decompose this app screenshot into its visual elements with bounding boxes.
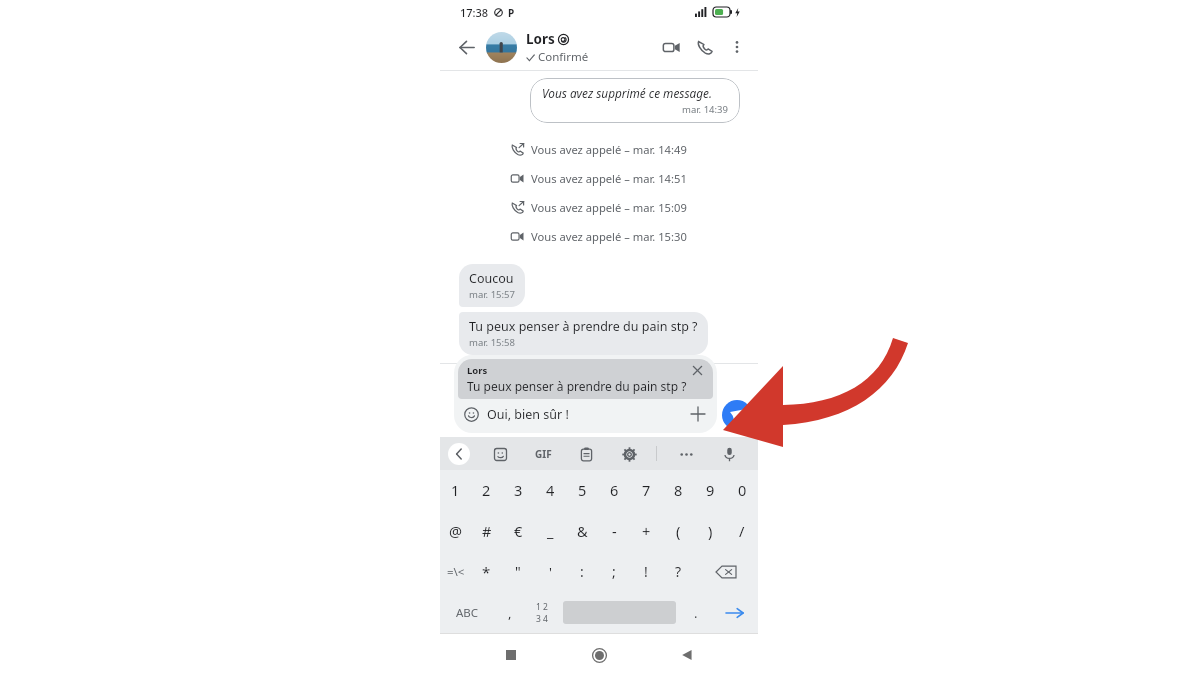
button[interactable]: ( [662,510,694,551]
staticText: . [694,604,698,622]
button[interactable]: Coucou [459,264,525,307]
button[interactable]: ) [694,510,726,551]
staticText: 1 [451,480,460,500]
button[interactable]: Lors [458,359,713,399]
button[interactable]: 9 [694,470,726,510]
button[interactable]: + [630,510,662,551]
button[interactable]: Hide toolbar [448,443,470,465]
button[interactable]: Video call [654,30,688,64]
button[interactable]: Vous avez appelé – mar. 15:09 [440,193,758,222]
button[interactable]: 2 [471,470,502,510]
button[interactable]: Home [582,638,616,672]
button[interactable]: ABC [440,592,495,633]
button[interactable]: 6 [598,470,630,510]
staticText: 4 [546,480,555,500]
button[interactable]: Emoji [463,406,480,423]
staticText: Lors [467,364,488,377]
button[interactable]: : [566,551,598,592]
staticText: 7 [642,480,651,500]
button[interactable]: 5 [566,470,598,510]
staticText: ) [708,521,713,541]
staticText: ' [549,563,552,581]
staticText: P [508,6,515,20]
staticText: =\< [447,564,465,580]
button[interactable]: Voice input [717,442,741,466]
button[interactable]: 4 [534,470,566,510]
button[interactable]: Call [688,30,722,64]
button[interactable]: Add attachment [687,403,709,425]
button[interactable]: 7 [630,470,662,510]
staticText: € [514,521,523,541]
button[interactable]: Vous avez appelé – mar. 14:49 [440,135,758,164]
staticText: Vous avez appelé – mar. 15:09 [531,200,687,215]
button[interactable]: 0 [726,470,758,510]
staticText: ? [675,562,682,581]
button[interactable]: Send [722,400,752,430]
button[interactable]: Vous avez appelé – mar. 15:30 [440,222,758,251]
staticText: Tu peux penser à prendre du pain stp ? [469,318,698,335]
staticText: Vous avez appelé – mar. 15:30 [531,229,687,244]
button[interactable]: € [502,510,534,551]
button[interactable]: & [566,510,598,551]
button[interactable]: Dismiss reply [691,364,704,377]
button[interactable]: _ [534,510,566,551]
button[interactable]: 8 [662,470,694,510]
button[interactable]: Vous avez supprimé ce message. [530,78,740,123]
button[interactable]: Enter [712,592,758,633]
button[interactable]: Delete [694,551,758,592]
staticText: ; [612,562,616,581]
button[interactable]: Vous avez appelé – mar. 14:51 [440,164,758,193]
staticText: 9 [706,480,715,500]
staticText: Vous avez supprimé ce message. [542,85,712,101]
button[interactable]: Recent apps [494,638,528,672]
staticText: : [580,562,584,581]
button[interactable]: 1 2 [525,592,559,633]
button[interactable]: - [598,510,630,551]
staticText: Tu peux penser à prendre du pain stp ? [467,378,687,394]
staticText: - [612,521,617,541]
staticText: ! [644,562,648,581]
staticText: Confirmé [538,49,589,65]
staticText: 8 [674,480,683,500]
button[interactable]: 3 [502,470,534,510]
button[interactable]: More [674,442,698,466]
staticText: Vous avez appelé – mar. 14:51 [531,171,687,186]
button[interactable]: Profile picture [486,32,517,63]
button[interactable]: * [471,551,502,592]
staticText: 5 [578,480,587,500]
staticText: Oui, bien sûr ! [487,406,687,423]
button[interactable]: Emoji [458,399,713,429]
staticText: ( [676,521,681,541]
staticText: ABC [456,605,479,621]
button[interactable]: Settings [617,442,641,466]
button[interactable]: GIF [532,444,555,464]
staticText: mar. 14:39 [682,103,728,116]
button[interactable]: # [471,510,502,551]
button[interactable]: @ [440,510,471,551]
button[interactable]: Lors [526,30,654,65]
button[interactable]: ! [630,551,662,592]
button[interactable]: 1 [440,470,471,510]
button[interactable]: ? [662,551,694,592]
button[interactable]: , [495,592,525,633]
button[interactable]: Back [670,638,704,672]
staticText: _ [547,521,554,541]
button[interactable]: =\< [440,551,471,592]
button[interactable]: Tu peux penser à prendre du pain stp ? [459,312,708,355]
staticText: & [577,521,588,541]
button[interactable]: More options [722,32,752,62]
button[interactable]: ' [534,551,566,592]
staticText: mar. 15:58 [469,336,515,349]
button[interactable]: Back [452,33,480,61]
button[interactable]: / [726,510,758,551]
button[interactable]: Clipboard [574,442,598,466]
staticText: * [482,562,491,582]
staticText: Lors [526,30,555,48]
button[interactable]: ; [598,551,630,592]
button[interactable]: " [502,551,534,592]
button[interactable]: . [680,592,712,633]
button[interactable]: Stickers [488,442,512,466]
staticText: , [508,604,512,622]
staticText: 1 2 [536,601,548,613]
